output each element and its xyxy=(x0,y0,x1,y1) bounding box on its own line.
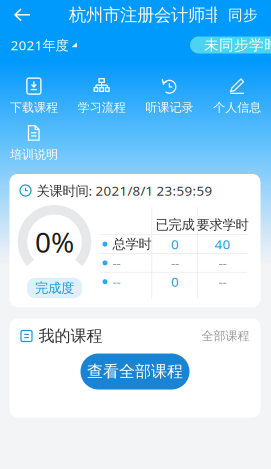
staticText: -- xyxy=(171,254,179,272)
button[interactable]: 学习流程 xyxy=(68,78,136,115)
button[interactable]: 同步 xyxy=(216,0,271,30)
staticText: 查看全部课程 xyxy=(87,362,183,381)
staticText: 已完成 xyxy=(155,217,194,233)
staticText: 未同步学时数 xyxy=(204,36,271,54)
button[interactable]: 返回 xyxy=(0,0,41,30)
staticText: 全部课程 xyxy=(201,329,249,343)
staticText: 40 xyxy=(214,235,230,253)
button[interactable]: 培训说明 xyxy=(0,125,68,162)
button[interactable]: 全部课程 xyxy=(201,329,249,343)
staticText: 个人信息 xyxy=(213,100,261,115)
staticText: 关课时间: 2021/8/1 23:59:59 xyxy=(36,182,212,199)
staticText: 学习流程 xyxy=(78,100,126,115)
staticText: 要求学时 xyxy=(196,217,248,233)
button[interactable]: 未同步学时数 xyxy=(190,30,271,60)
staticText: 培训说明 xyxy=(10,147,58,162)
button[interactable]: 下载课程 xyxy=(0,78,68,115)
staticText: 2021年度 xyxy=(10,36,68,54)
button[interactable]: 查看全部课程 xyxy=(80,353,189,389)
staticText: 下载课程 xyxy=(10,100,58,115)
staticText: 听课记录 xyxy=(145,100,193,115)
button[interactable]: 2021年度 xyxy=(0,30,77,60)
staticText: -- xyxy=(218,254,226,272)
button[interactable]: 个人信息 xyxy=(203,78,271,115)
staticText: -- xyxy=(218,273,226,290)
staticText: 杭州市注册会计师非执业会员继续教育 xyxy=(69,4,271,26)
staticText: 0% xyxy=(35,223,74,260)
staticText: 同步 xyxy=(228,6,258,24)
staticText: -- xyxy=(112,254,120,272)
staticText: 0 xyxy=(171,273,179,290)
staticText: 我的课程 xyxy=(38,326,102,346)
staticText: 完成度 xyxy=(35,280,74,296)
staticText: 0 xyxy=(171,235,179,253)
staticText: 总学时 xyxy=(112,236,151,252)
staticText: -- xyxy=(112,273,120,290)
button[interactable]: 听课记录 xyxy=(135,78,203,115)
